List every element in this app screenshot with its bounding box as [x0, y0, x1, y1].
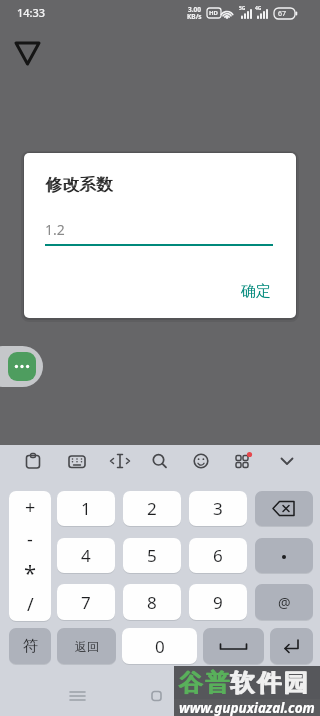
staticText: 返回 — [75, 639, 99, 654]
button[interactable] — [183, 447, 219, 477]
button[interactable]: 1 — [57, 491, 115, 526]
button[interactable]: 9 — [189, 584, 247, 620]
staticText: 确定 — [241, 282, 271, 301]
staticText: 3.00 — [188, 5, 201, 14]
staticText: 5 — [147, 544, 157, 567]
button[interactable] — [15, 447, 51, 477]
button[interactable]: 6 — [189, 538, 247, 573]
staticText: 修改系数 — [45, 174, 113, 195]
button[interactable] — [63, 684, 93, 708]
staticText: 0 — [155, 635, 165, 658]
button[interactable] — [224, 447, 260, 477]
staticText: 谷普 — [177, 668, 230, 698]
button[interactable]: 0 — [122, 628, 197, 664]
button[interactable]: 4 — [57, 538, 115, 573]
button[interactable] — [8, 36, 46, 70]
button[interactable]: 返回 — [57, 628, 116, 664]
button[interactable]: 3 — [189, 491, 247, 526]
button[interactable] — [144, 684, 169, 708]
staticText: * — [24, 557, 37, 587]
staticText: - — [27, 527, 33, 552]
staticText: www.gupuxiazal.com — [179, 699, 315, 716]
button[interactable] — [142, 447, 178, 477]
button[interactable] — [59, 447, 95, 477]
button[interactable]: 符 — [9, 628, 51, 664]
staticText: 4G — [255, 5, 262, 12]
staticText: 5G — [239, 5, 246, 12]
staticText: 软件园 — [230, 668, 310, 698]
staticText: + — [25, 495, 36, 520]
staticText: 谷普 — [178, 668, 231, 698]
staticText: 67 — [278, 9, 287, 19]
button[interactable]: 确定 — [228, 271, 284, 311]
staticText: 6 — [213, 544, 223, 567]
staticText: 1 — [81, 497, 91, 520]
button[interactable] — [270, 628, 313, 664]
staticText: 7 — [81, 591, 91, 614]
staticText: 修改系数 — [46, 174, 114, 195]
staticText: 8 — [147, 591, 157, 614]
staticText: 1.2 — [45, 220, 65, 239]
button[interactable]: @ — [255, 584, 313, 620]
staticText: 14:33 — [17, 5, 46, 20]
staticText: 符 — [23, 637, 38, 656]
button[interactable] — [45, 213, 273, 246]
button[interactable] — [269, 447, 305, 477]
staticText: 4 — [81, 544, 91, 567]
staticText: 3 — [213, 497, 223, 520]
button[interactable]: 8 — [123, 584, 181, 620]
button[interactable] — [203, 628, 264, 664]
button[interactable]: 7 — [57, 584, 115, 620]
staticText: / — [27, 592, 34, 617]
button[interactable] — [255, 538, 313, 573]
staticText: 软件园 — [231, 668, 311, 698]
staticText: KB/s — [187, 12, 202, 21]
staticText: HD — [209, 9, 218, 17]
button[interactable]: 5 — [123, 538, 181, 573]
button[interactable] — [0, 346, 43, 387]
button[interactable] — [255, 491, 313, 526]
button[interactable] — [102, 447, 138, 477]
staticText: 2 — [147, 497, 157, 520]
staticText: 9 — [213, 591, 223, 614]
button[interactable]: 2 — [123, 491, 181, 526]
staticText: @ — [278, 593, 291, 612]
button[interactable]: + — [9, 491, 51, 621]
